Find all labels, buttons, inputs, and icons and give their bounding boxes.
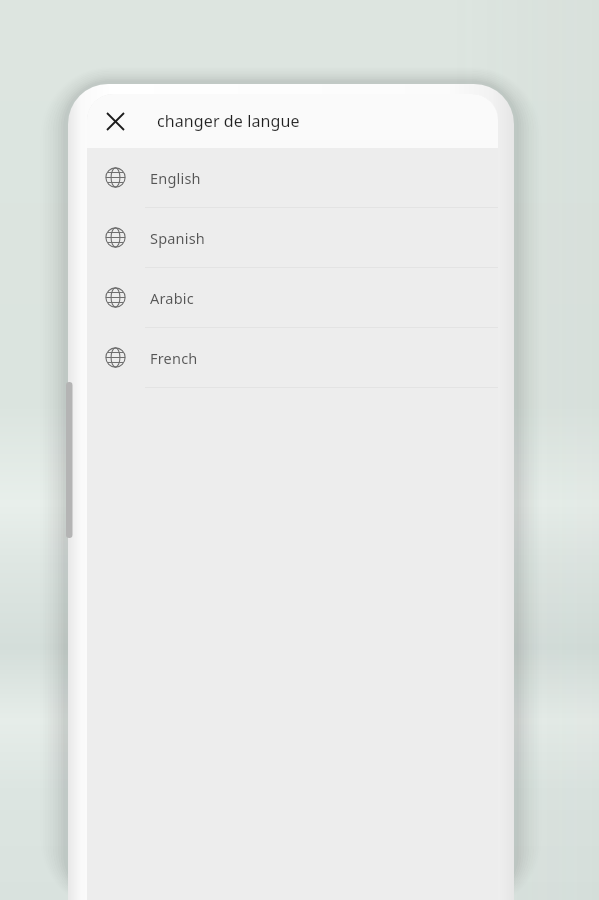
staticText: English (150, 168, 201, 188)
staticText: Arabic (150, 288, 194, 308)
button[interactable]: Spanish (87, 208, 498, 268)
button[interactable]: Arabic (87, 268, 498, 328)
staticText: Spanish (150, 228, 206, 248)
staticText: French (150, 348, 198, 368)
button[interactable]: French (87, 328, 498, 388)
button[interactable]: English (87, 148, 498, 208)
staticText: changer de langue (157, 110, 300, 132)
button[interactable]: Close (93, 99, 137, 143)
